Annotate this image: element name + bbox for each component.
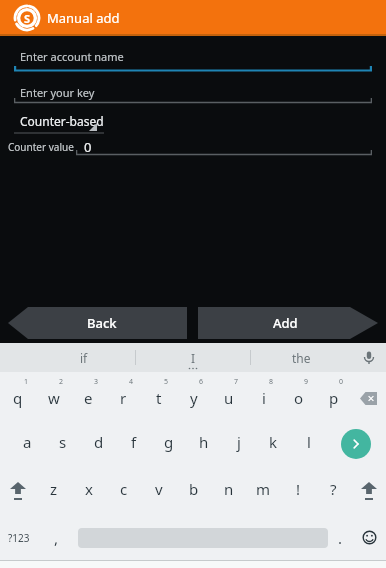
staticText: S <box>24 11 31 26</box>
staticText: 4 <box>129 377 134 387</box>
button[interactable]: n <box>211 467 246 515</box>
button[interactable]: 1 <box>0 372 36 420</box>
button[interactable]: b <box>176 467 211 515</box>
button[interactable]: 5 <box>141 372 176 420</box>
staticText: Back <box>87 314 117 332</box>
button[interactable]: k <box>256 420 291 467</box>
staticText: 6 <box>199 377 204 387</box>
staticText: q <box>13 388 23 408</box>
staticText: ? <box>330 479 337 499</box>
staticText: 3 <box>94 377 99 387</box>
button[interactable]: ?123 <box>0 515 38 560</box>
staticText: 0 <box>84 138 92 156</box>
staticText: g <box>164 432 174 452</box>
staticText: 2 <box>59 377 64 387</box>
staticText: Enter your key <box>20 85 95 100</box>
button[interactable]: 3 <box>71 372 106 420</box>
staticText: i <box>262 388 266 408</box>
staticText: f <box>131 432 137 452</box>
staticText: c <box>120 479 128 499</box>
staticText: x <box>85 479 93 499</box>
staticText: k <box>269 432 278 452</box>
staticText: if <box>80 350 88 366</box>
button[interactable]: if <box>0 343 136 372</box>
staticText: h <box>199 432 209 452</box>
button[interactable]: 9 <box>281 372 316 420</box>
staticText: r <box>120 388 127 408</box>
button[interactable]: c <box>106 467 141 515</box>
button[interactable] <box>0 467 36 515</box>
staticText: a <box>23 432 32 452</box>
staticText: ?123 <box>8 531 30 545</box>
button[interactable]: z <box>36 467 71 515</box>
button[interactable]: g <box>151 420 186 467</box>
button[interactable]: Back <box>0 307 187 339</box>
staticText: 5 <box>164 377 169 387</box>
staticText: e <box>84 388 93 408</box>
button[interactable]: 0 <box>316 372 351 420</box>
staticText: I <box>191 350 196 366</box>
button[interactable]: 7 <box>211 372 246 420</box>
button[interactable]: h <box>186 420 221 467</box>
button[interactable]: Add <box>198 307 386 339</box>
button[interactable]: j <box>221 420 256 467</box>
staticText: d <box>94 432 104 452</box>
button[interactable]: the <box>251 343 351 372</box>
staticText: 1 <box>24 377 29 387</box>
button[interactable]: 2 <box>36 372 71 420</box>
staticText: 0 <box>339 377 344 387</box>
staticText: the <box>292 350 311 366</box>
button[interactable] <box>326 420 386 467</box>
staticText: ! <box>296 479 301 499</box>
button[interactable]: s <box>45 420 81 467</box>
button[interactable]: . <box>328 515 352 560</box>
button[interactable]: v <box>141 467 176 515</box>
button[interactable]: f <box>116 420 151 467</box>
button[interactable]: l <box>291 420 326 467</box>
staticText: 9 <box>304 377 309 387</box>
staticText: Add <box>273 314 298 332</box>
staticText: 7 <box>234 377 239 387</box>
staticText: t <box>156 388 162 408</box>
button[interactable]: 4 <box>106 372 141 420</box>
staticText: Counter value <box>8 140 74 154</box>
staticText: u <box>224 388 234 408</box>
button[interactable]: 8 <box>246 372 281 420</box>
button[interactable] <box>352 515 386 560</box>
button[interactable]: 6 <box>176 372 211 420</box>
staticText: m <box>256 479 271 499</box>
staticText: b <box>189 479 199 499</box>
button[interactable] <box>351 343 386 372</box>
staticText: . <box>338 528 343 548</box>
button[interactable]: d <box>81 420 116 467</box>
staticText: Manual add <box>47 9 120 27</box>
button[interactable]: Counter-based <box>14 110 104 134</box>
staticText: j <box>237 432 241 452</box>
staticText: w <box>48 388 60 408</box>
staticText: p <box>329 388 339 408</box>
button[interactable]: x <box>71 467 106 515</box>
staticText: s <box>59 432 67 452</box>
staticText: Counter-based <box>20 113 104 129</box>
button[interactable]: I <box>136 343 250 372</box>
staticText: , <box>54 528 59 548</box>
staticText: v <box>155 479 163 499</box>
staticText: n <box>224 479 234 499</box>
button[interactable]: , <box>38 515 74 560</box>
button[interactable] <box>351 372 386 420</box>
staticText: 8 <box>269 377 274 387</box>
staticText: o <box>294 388 304 408</box>
staticText: z <box>50 479 58 499</box>
staticText: y <box>190 388 198 408</box>
button[interactable] <box>351 467 386 515</box>
button[interactable]: ? <box>316 467 351 515</box>
button[interactable]: ! <box>281 467 316 515</box>
staticText: Enter account name <box>20 49 124 64</box>
button[interactable]: m <box>246 467 281 515</box>
button[interactable]: a <box>9 420 45 467</box>
staticText: l <box>307 432 311 452</box>
